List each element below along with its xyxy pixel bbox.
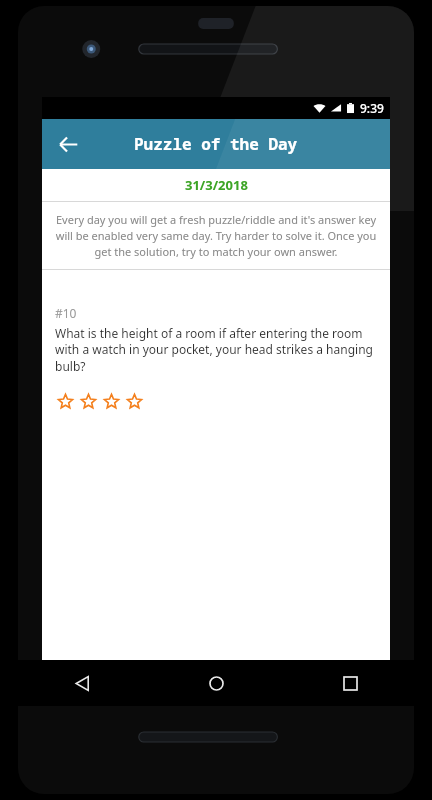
button[interactable]: Rate 1 stars bbox=[55, 391, 75, 411]
staticText: What is the height of a room if after en… bbox=[55, 325, 377, 375]
button[interactable]: Rate 3 stars bbox=[101, 391, 121, 411]
button[interactable]: Recent apps bbox=[330, 663, 370, 703]
staticText: Puzzle of the Day bbox=[134, 133, 298, 155]
staticText: 9:39 bbox=[360, 100, 384, 116]
button[interactable]: Rate 2 stars bbox=[78, 391, 98, 411]
staticText: Every day you will get a fresh puzzle/ri… bbox=[52, 212, 380, 259]
button[interactable]: Back bbox=[62, 663, 102, 703]
button[interactable]: Rate 4 stars bbox=[124, 391, 144, 411]
button[interactable]: Home bbox=[196, 663, 236, 703]
staticText: 31/3/2018 bbox=[185, 176, 248, 194]
button[interactable]: Back bbox=[48, 124, 88, 164]
staticText: #10 bbox=[55, 305, 77, 321]
